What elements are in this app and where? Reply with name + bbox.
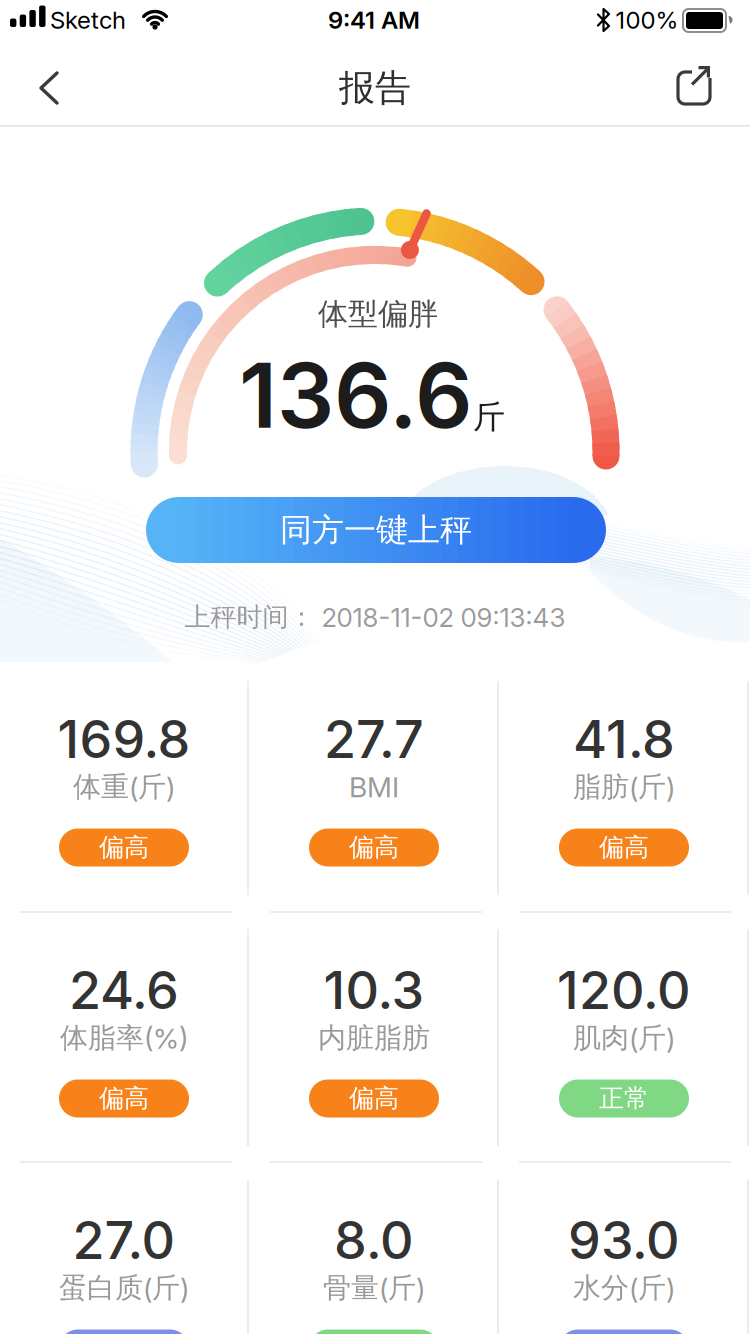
staticText: 水分(斤) xyxy=(573,1270,675,1306)
button[interactable]: 同方一键上秤 xyxy=(146,497,606,563)
staticText: 10.3 xyxy=(323,958,424,1021)
staticText: 偏高 xyxy=(349,1083,399,1114)
staticText: 169.8 xyxy=(57,707,190,770)
staticText: 体重(斤) xyxy=(73,769,175,805)
staticText: 内脏脂肪 xyxy=(318,1020,430,1056)
staticText: 136.6 xyxy=(239,341,473,449)
staticText: 同方一键上秤 xyxy=(280,510,472,550)
staticText: 蛋白质(斤) xyxy=(59,1270,189,1306)
staticText: 41.8 xyxy=(573,707,675,770)
staticText: 93.0 xyxy=(568,1208,680,1271)
staticText: 体型偏胖 xyxy=(318,295,438,333)
staticText: 27.0 xyxy=(72,1208,175,1271)
staticText: 斤 xyxy=(473,397,505,437)
staticText: 上秤时间： 2018-11-02 09:13:43 xyxy=(184,601,565,633)
staticText: 120.0 xyxy=(557,958,691,1021)
staticText: 体脂率(%) xyxy=(60,1020,188,1056)
staticText: 100% xyxy=(615,5,678,34)
staticText: 8.0 xyxy=(334,1208,414,1271)
button[interactable]: Back xyxy=(19,58,79,118)
staticText: 肌肉(斤) xyxy=(573,1020,675,1056)
staticText: 偏高 xyxy=(99,832,149,863)
staticText: 偏高 xyxy=(349,832,399,863)
staticText: 27.7 xyxy=(324,707,424,770)
staticText: Sketch xyxy=(50,5,126,34)
staticText: 9:41 AM xyxy=(328,5,420,34)
staticText: 骨量(斤) xyxy=(323,1270,425,1306)
staticText: 24.6 xyxy=(69,958,179,1021)
button[interactable]: Share xyxy=(664,58,724,118)
staticText: 正常 xyxy=(599,1083,649,1114)
staticText: 脂肪(斤) xyxy=(573,769,675,805)
staticText: 报告 xyxy=(339,65,411,111)
staticText: BMI xyxy=(349,770,399,804)
staticText: 偏高 xyxy=(99,1083,149,1114)
staticText: 偏高 xyxy=(599,832,649,863)
